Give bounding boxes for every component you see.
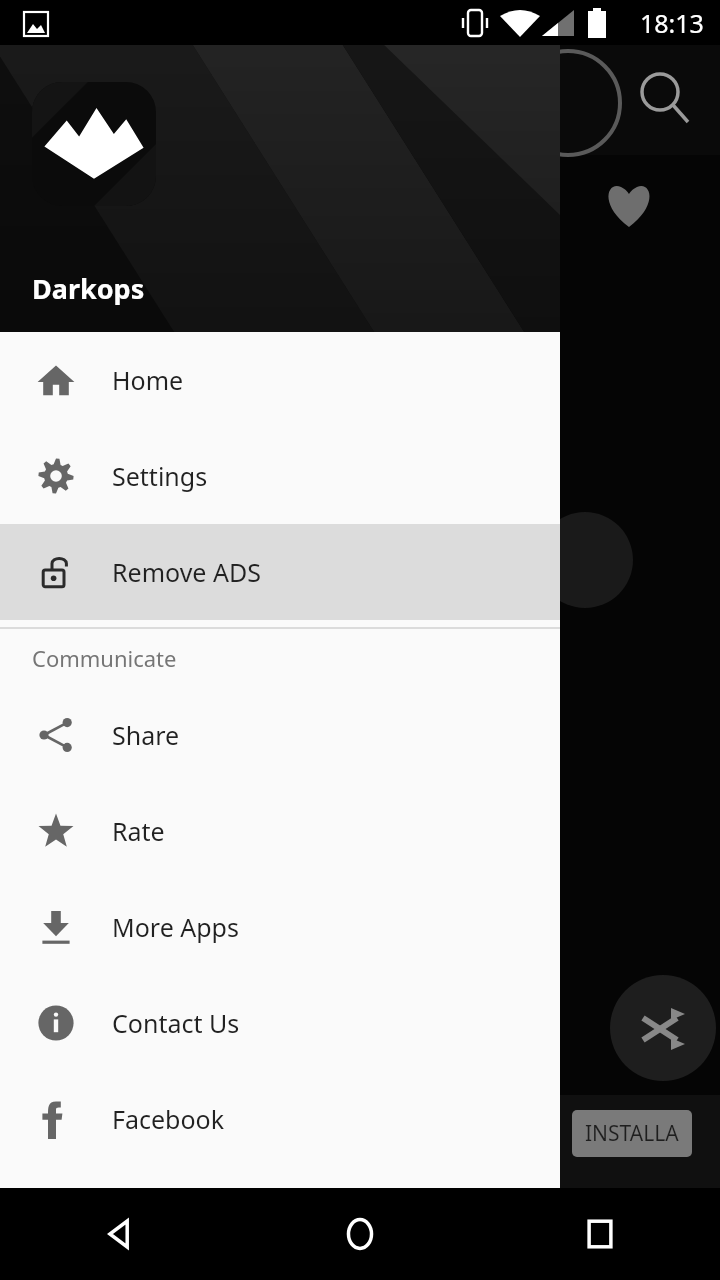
staticText: More Apps <box>112 910 239 944</box>
staticText: Facebook <box>112 1102 225 1136</box>
staticText: Share <box>112 718 180 752</box>
button[interactable]: Recent apps <box>480 1188 720 1280</box>
button[interactable]: Home <box>0 332 560 428</box>
staticText: Communicate <box>32 643 177 673</box>
button[interactable]: Remove ADS <box>0 524 560 620</box>
button[interactable]: More Apps <box>0 879 560 975</box>
button[interactable]: Share <box>0 687 560 783</box>
staticText: Contact Us <box>112 1006 240 1040</box>
button[interactable]: Rate <box>0 783 560 879</box>
button[interactable]: Home <box>240 1188 480 1280</box>
button[interactable]: Back <box>0 1188 240 1280</box>
staticText: Darkops <box>32 270 145 307</box>
staticText: 18:13 <box>640 6 704 40</box>
staticText: Rate <box>112 814 165 848</box>
button[interactable]: Contact Us <box>0 975 560 1071</box>
button[interactable]: Settings <box>0 428 560 524</box>
button[interactable]: INSTALLA <box>572 1110 692 1157</box>
staticText: Home <box>112 363 184 397</box>
staticText: INSTALLA <box>585 1119 679 1148</box>
staticText: Remove ADS <box>112 555 261 589</box>
staticText: Settings <box>112 459 208 493</box>
button[interactable]: Facebook <box>0 1071 560 1167</box>
